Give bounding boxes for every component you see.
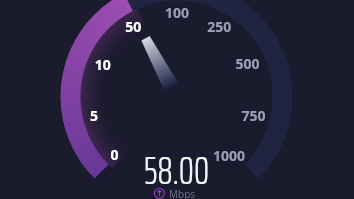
- button[interactable]: Speed test gauge, 58.00 Mbps download: [0, 0, 354, 199]
